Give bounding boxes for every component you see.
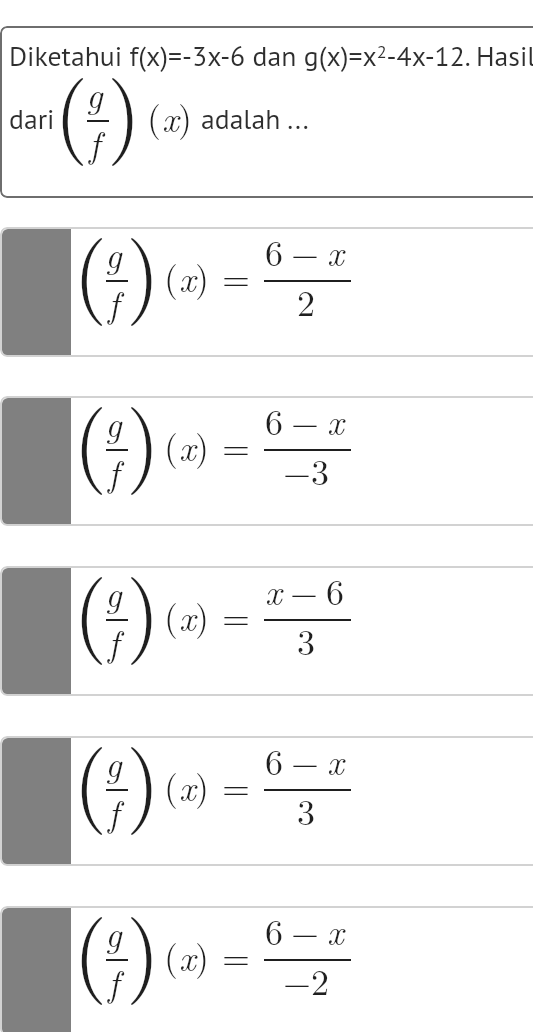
staticText: f (108, 615, 120, 666)
staticText: 6 (326, 566, 344, 615)
button[interactable]: Option A: (g over f)(x) equals (6 minus … (0, 227, 533, 357)
staticText: x (179, 251, 196, 302)
staticText: ) (126, 906, 161, 1009)
staticText: ) (195, 929, 210, 980)
staticText: ( (164, 250, 179, 301)
staticText: ) (195, 589, 210, 640)
staticText: g (105, 906, 122, 957)
staticText: ( (73, 736, 108, 839)
button[interactable]: Option B: (g over f)(x) equals (6 minus … (0, 396, 533, 526)
staticText: 3 (297, 784, 315, 835)
staticText: ) (126, 566, 161, 669)
staticText: 2 (297, 275, 315, 326)
staticText: g (105, 227, 122, 278)
staticText: f (89, 116, 101, 167)
staticText: ) (126, 396, 161, 499)
staticText: = (222, 419, 251, 470)
staticText: 3 (297, 614, 315, 665)
staticText: − (291, 396, 320, 445)
staticText: − (283, 444, 312, 495)
staticText: x (327, 906, 344, 955)
staticText: − (291, 906, 320, 955)
staticText: 6 (265, 227, 283, 276)
staticText: x (327, 396, 344, 445)
staticText: = (222, 759, 251, 810)
staticText: f (108, 955, 120, 1006)
staticText: ) (126, 227, 161, 330)
staticText: ) (126, 736, 161, 839)
staticText: ) (107, 45, 142, 170)
staticText: x (162, 91, 179, 142)
staticText: dari (9, 101, 55, 137)
staticText: x (327, 736, 344, 785)
staticText: Diketahui f(x)=-3x-6 dan g(x)=x2-4x-12. … (9, 38, 533, 74)
staticText: x (265, 566, 282, 615)
button[interactable]: Option C: (g over f)(x) equals (x minus … (0, 566, 533, 696)
staticText: 3 (311, 444, 329, 495)
staticText: = (222, 589, 251, 640)
staticText: ( (73, 396, 108, 499)
button[interactable]: Option E: (g over f)(x) equals (6 minus … (0, 906, 533, 1032)
staticText: f (108, 785, 120, 836)
staticText: ( (164, 929, 179, 980)
button[interactable]: Option D: (g over f)(x) equals (6 minus … (0, 736, 533, 866)
staticText: g (105, 736, 122, 787)
staticText: 6 (265, 396, 283, 445)
staticText: − (283, 954, 312, 1005)
staticText: ( (73, 566, 108, 669)
staticText: − (291, 736, 320, 785)
staticText: ) (195, 250, 210, 301)
staticText: ) (178, 90, 193, 141)
staticText: ( (164, 589, 179, 640)
staticText: x (179, 590, 196, 641)
staticText: 2 (311, 954, 329, 1005)
staticText: 6 (265, 906, 283, 955)
staticText: f (108, 445, 120, 496)
staticText: adalah ... (201, 101, 309, 137)
staticText: x (179, 420, 196, 471)
staticText: ( (164, 419, 179, 470)
staticText: = (222, 250, 251, 301)
staticText: g (105, 566, 122, 617)
staticText: x (179, 930, 196, 981)
staticText: g (86, 67, 103, 118)
staticText: ( (73, 227, 108, 330)
staticText: − (291, 227, 320, 276)
staticText: x (179, 760, 196, 811)
staticText: ) (195, 759, 210, 810)
staticText: ( (54, 45, 89, 170)
staticText: ) (195, 419, 210, 470)
staticText: g (105, 396, 122, 447)
staticText: − (290, 566, 319, 615)
staticText: ( (164, 759, 179, 810)
staticText: x (327, 227, 344, 276)
staticText: 6 (265, 736, 283, 785)
staticText: ( (147, 90, 162, 141)
staticText: ( (73, 906, 108, 1009)
staticText: = (222, 929, 251, 980)
button[interactable]: Diketahui f(x)=-3x-6 dan g(x)=x2-4x-12. … (0, 26, 533, 198)
staticText: f (108, 276, 120, 327)
